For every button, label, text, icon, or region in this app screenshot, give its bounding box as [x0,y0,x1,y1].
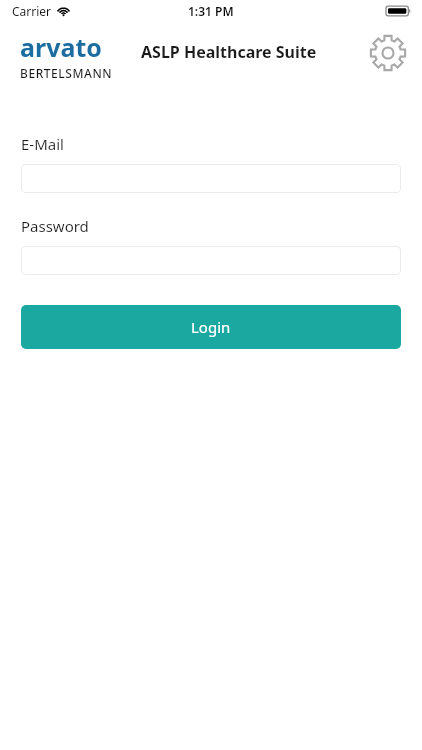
staticText: Carrier [12,3,52,19]
staticText: 1:31 PM [188,3,234,19]
button[interactable]: Login [21,305,401,349]
button[interactable]: Settings [366,31,410,75]
button[interactable]: Text input [21,164,401,193]
staticText: E-Mail [21,134,64,154]
staticText: Password [21,216,89,236]
staticText: Login [191,317,231,337]
button[interactable]: Text input [21,246,401,275]
staticText: ASLP Healthcare Suite [141,41,317,63]
staticText: arvato [20,30,102,64]
staticText: BERTELSMANN [20,65,113,81]
